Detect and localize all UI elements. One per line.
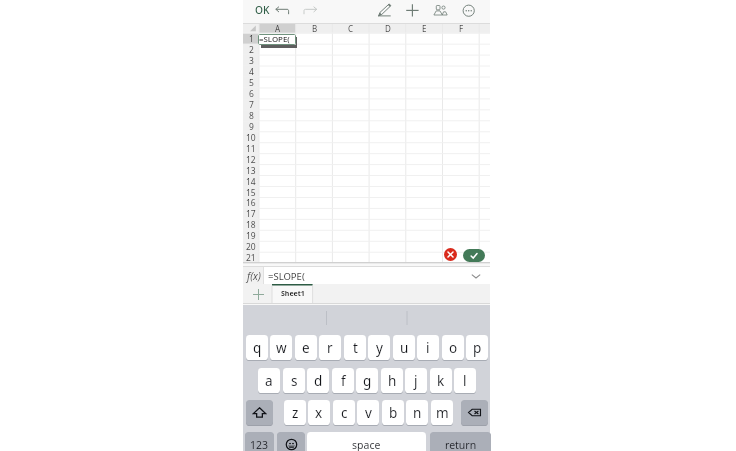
button[interactable]: 18 (243, 219, 259, 230)
button[interactable]: d (307, 368, 329, 393)
staticText: D (385, 23, 391, 33)
staticText: 15 (246, 187, 256, 198)
button[interactable]: v (357, 400, 379, 425)
button[interactable]: h (381, 368, 403, 393)
staticText: a (265, 372, 273, 390)
staticText: 19 (246, 230, 256, 241)
button[interactable]: F (443, 23, 480, 33)
button[interactable]: x (308, 400, 330, 425)
button[interactable]: 11 (243, 143, 259, 154)
staticText: 21 (246, 252, 256, 263)
button[interactable]: 6 (243, 88, 259, 99)
button[interactable]: Add sheet (247, 284, 269, 304)
button[interactable]: q (246, 335, 268, 360)
button[interactable]: return (430, 432, 491, 451)
button[interactable]: f (332, 368, 354, 393)
staticText: m (436, 404, 449, 422)
button[interactable]: z (284, 400, 306, 425)
button[interactable]: Redo (302, 4, 320, 17)
staticText: g (363, 372, 372, 390)
button[interactable]: More options (461, 3, 477, 19)
staticText: v (365, 404, 372, 422)
staticText: b (389, 404, 398, 422)
button[interactable]: Cancel (444, 248, 457, 261)
button[interactable]: Confirm (463, 249, 485, 262)
button[interactable]: C (332, 23, 369, 33)
button[interactable]: A (259, 23, 296, 33)
button[interactable]: l (454, 368, 476, 393)
button[interactable]: E (406, 23, 443, 33)
button[interactable]: B (296, 23, 333, 33)
button[interactable]: OK (250, 0, 274, 20)
button[interactable]: 13 (243, 165, 259, 176)
button[interactable]: 2 (243, 44, 259, 55)
button[interactable]: u (393, 335, 415, 360)
button[interactable]: o (442, 335, 464, 360)
staticText: Sheet1 (281, 289, 305, 299)
staticText: y (376, 339, 383, 357)
staticText: 17 (246, 208, 256, 219)
staticText: F (459, 23, 464, 33)
button[interactable]: 19 (243, 230, 259, 241)
button[interactable]: 17 (243, 208, 259, 219)
button[interactable]: c (333, 400, 355, 425)
button[interactable]: m (431, 400, 453, 425)
button[interactable]: y (368, 335, 390, 360)
button[interactable]: k (430, 368, 452, 393)
button[interactable]: r (319, 335, 341, 360)
button[interactable]: Backspace (461, 400, 488, 425)
staticText: 18 (246, 219, 256, 230)
button[interactable]: 123 (245, 432, 274, 451)
staticText: return (445, 438, 477, 451)
button[interactable]: n (406, 400, 428, 425)
button[interactable]: 14 (243, 176, 259, 187)
button[interactable]: 1 (243, 33, 259, 44)
button[interactable]: i (417, 335, 439, 360)
button[interactable]: 12 (243, 154, 259, 165)
button[interactable]: space (307, 432, 426, 451)
button[interactable]: 21 (243, 252, 259, 263)
button[interactable]: 5 (243, 77, 259, 88)
button[interactable]: b (382, 400, 404, 425)
button[interactable]: p (466, 335, 488, 360)
button[interactable]: 20 (243, 241, 259, 252)
staticText: h (388, 372, 397, 390)
button[interactable]: D (369, 23, 406, 33)
staticText: space (352, 438, 381, 451)
staticText: 6 (249, 88, 254, 99)
button[interactable]: t (344, 335, 366, 360)
button[interactable]: Sheet1 (272, 284, 313, 304)
button[interactable]: Share (432, 3, 450, 17)
button[interactable]: 7 (243, 99, 259, 110)
button[interactable]: Functions (243, 266, 264, 285)
button[interactable]: 16 (243, 197, 259, 208)
button[interactable]: 8 (243, 110, 259, 121)
button[interactable]: g (356, 368, 378, 393)
staticText: t (353, 339, 358, 357)
staticText: OK (255, 3, 270, 17)
button[interactable]: Undo (274, 4, 292, 17)
button[interactable]: 10 (243, 132, 259, 143)
button[interactable]: Shift (246, 400, 273, 425)
button[interactable]: 9 (243, 121, 259, 132)
button[interactable]: 3 (243, 55, 259, 66)
button[interactable]: a (258, 368, 280, 393)
staticText: C (348, 23, 354, 33)
button[interactable]: Insert (404, 2, 421, 19)
staticText: 7 (249, 99, 254, 110)
staticText: u (400, 339, 409, 357)
button[interactable]: j (405, 368, 427, 393)
button[interactable]: Emoji (277, 432, 305, 451)
button[interactable]: =SLOPE( (258, 34, 296, 45)
button[interactable]: e (295, 335, 317, 360)
staticText: B (312, 23, 318, 33)
staticText: f(x) (247, 269, 261, 283)
staticText: o (449, 339, 458, 357)
button[interactable]: Expand formula bar (469, 269, 483, 283)
button[interactable]: w (270, 335, 292, 360)
staticText: 10 (246, 132, 256, 143)
button[interactable]: Edit (376, 3, 393, 18)
button[interactable]: s (283, 368, 305, 393)
button[interactable]: 4 (243, 66, 259, 77)
button[interactable]: 15 (243, 187, 259, 198)
